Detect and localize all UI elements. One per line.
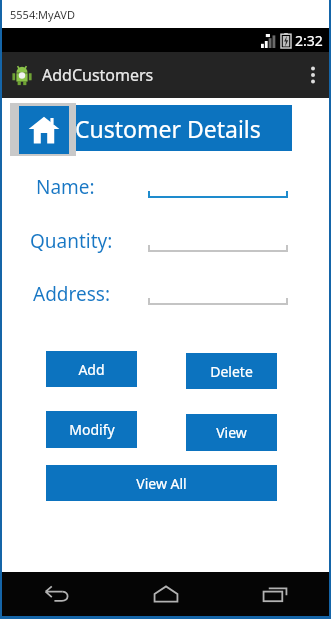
staticText: AddCustomers: [42, 64, 154, 86]
button[interactable]: [148, 171, 288, 201]
staticText: Delete: [210, 362, 253, 381]
button[interactable]: [148, 278, 288, 308]
button[interactable]: Add: [46, 351, 137, 387]
button[interactable]: Home: [111, 572, 220, 616]
staticText: Modify: [69, 420, 115, 439]
button[interactable]: [148, 225, 288, 255]
staticText: 2:32: [295, 31, 323, 50]
staticText: Address:: [33, 281, 110, 307]
staticText: View All: [136, 474, 187, 493]
staticText: Name:: [36, 174, 95, 200]
button[interactable]: View: [186, 414, 277, 451]
button[interactable]: Back: [2, 572, 111, 616]
staticText: Quantity:: [30, 228, 113, 254]
staticText: View: [216, 423, 247, 442]
button[interactable]: View All: [46, 465, 277, 501]
button[interactable]: Modify: [46, 411, 137, 448]
button[interactable]: More options: [297, 52, 329, 98]
staticText: Customer Details: [75, 113, 261, 144]
button[interactable]: Delete: [186, 353, 277, 389]
button[interactable]: Recent apps: [220, 572, 329, 616]
staticText: 5554:MyAVD: [10, 7, 75, 22]
staticText: Add: [78, 360, 105, 379]
button[interactable]: Home: [10, 103, 76, 156]
